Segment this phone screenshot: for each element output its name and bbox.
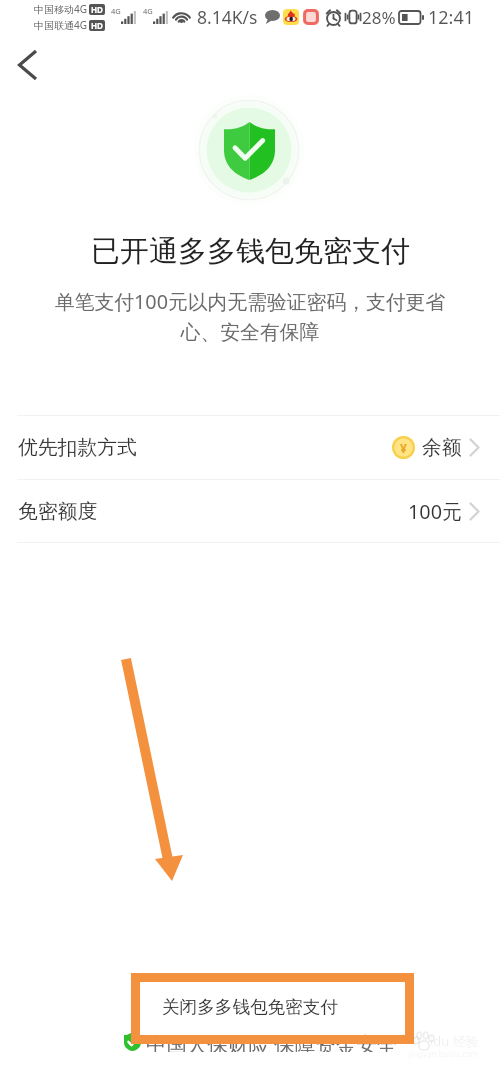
- staticText: 单笔支付100元以内无需验证密码，支付更省心、安全有保障: [48, 288, 452, 345]
- button[interactable]: Back: [4, 42, 50, 88]
- staticText: 4G: [111, 6, 121, 16]
- staticText: 100元: [408, 498, 462, 525]
- staticText: ¥: [400, 440, 407, 456]
- staticText: 中国人保财险 保障资金安全: [146, 1030, 398, 1052]
- staticText: 关闭多多钱包免密支付: [162, 996, 338, 1018]
- button[interactable]: 免密额度: [0, 480, 500, 542]
- button[interactable]: 优先扣款方式: [0, 416, 500, 479]
- staticText: 余额: [422, 435, 462, 460]
- staticText: 优先扣款方式: [18, 435, 137, 460]
- staticText: 28%: [362, 6, 396, 29]
- staticText: 免密额度: [18, 499, 98, 524]
- staticText: 8.14K/s: [197, 5, 258, 29]
- button[interactable]: 关闭多多钱包免密支付: [0, 980, 500, 1034]
- staticText: HD: [91, 20, 103, 31]
- staticText: 中国联通4G: [34, 18, 87, 32]
- staticText: idu 经验: [430, 1032, 479, 1050]
- staticText: 12:41: [428, 5, 475, 30]
- staticText: HD: [91, 4, 103, 15]
- staticText: 已开通多多钱包免密支付: [91, 233, 410, 270]
- staticText: 4G: [143, 6, 153, 16]
- staticText: jingyan.baidu.com: [409, 1048, 479, 1059]
- staticText: 中国移动4G: [34, 2, 87, 16]
